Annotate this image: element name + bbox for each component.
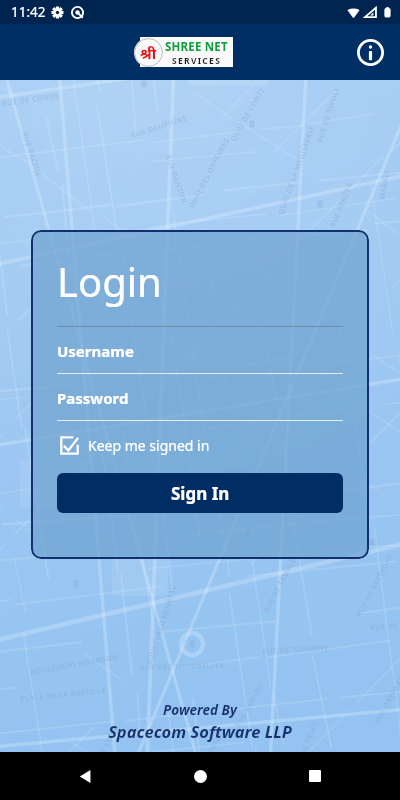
staticText: Powered By <box>163 701 237 719</box>
staticText: Keep me signed in <box>88 436 210 455</box>
staticText: Login <box>57 254 162 308</box>
staticText: MARAIS <box>377 169 393 201</box>
staticText: QUAI DES ORFEVRES <box>186 136 232 210</box>
staticText: RUE DE BRETAGNE <box>354 551 397 619</box>
staticText: RUE DE TEMPLE <box>262 556 299 614</box>
button[interactable]: Home <box>183 759 217 793</box>
button[interactable]: Back <box>68 759 102 793</box>
staticText: RUE AMELOT <box>233 681 267 729</box>
staticText: BOULEVARD HENRI IV <box>144 583 180 666</box>
staticText: BOULEVARD BOURDON <box>30 652 119 678</box>
staticText: श्री <box>140 43 157 63</box>
staticText: SHREE NET <box>165 39 228 55</box>
staticText: RUE OBERKAMPF <box>373 664 400 726</box>
staticText: PLACE DE LA BASTILLE <box>20 685 107 704</box>
staticText: RUE DE LYON <box>87 725 121 775</box>
staticText: RUE DE CONDE <box>2 91 60 109</box>
staticText: RUE DAUPHINE <box>130 113 189 141</box>
staticText: RUE DES TOURNELLES <box>140 660 225 673</box>
staticText: RUE BERGER <box>328 181 356 229</box>
button[interactable]: Recent apps <box>298 759 332 793</box>
staticText: Spacecom Software LLP <box>108 720 292 742</box>
staticText: RUE RACINE <box>19 131 43 179</box>
staticText: QUAI DE LA MEGISSERIE <box>276 124 318 216</box>
button[interactable]: Sign In <box>57 473 343 513</box>
staticText: RUE DE RIVOLI <box>315 86 342 144</box>
button[interactable]: Keep me signed in <box>60 436 210 455</box>
staticText: RUE DE CHARENTON <box>181 728 227 800</box>
staticText: QUAI DE CONTI <box>229 86 267 143</box>
staticText: Sign In <box>171 482 230 505</box>
staticText: RUE DANTON <box>162 154 190 206</box>
staticText: SERVICES <box>172 55 222 67</box>
staticText: Password <box>57 388 129 408</box>
button[interactable]: Information <box>352 34 388 70</box>
staticText: RUE PELEE <box>296 719 321 761</box>
staticText: 11:42 <box>11 3 46 21</box>
staticText: RUE DE LA ROQUETTE <box>370 617 400 633</box>
staticText: Username <box>57 341 134 361</box>
staticText: RUE DE TURENNE <box>262 643 329 657</box>
